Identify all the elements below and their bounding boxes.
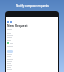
staticText: Notify compose requests: [16, 4, 49, 8]
button[interactable]: [7, 50, 13, 53]
staticText: New Request: [7, 24, 28, 28]
